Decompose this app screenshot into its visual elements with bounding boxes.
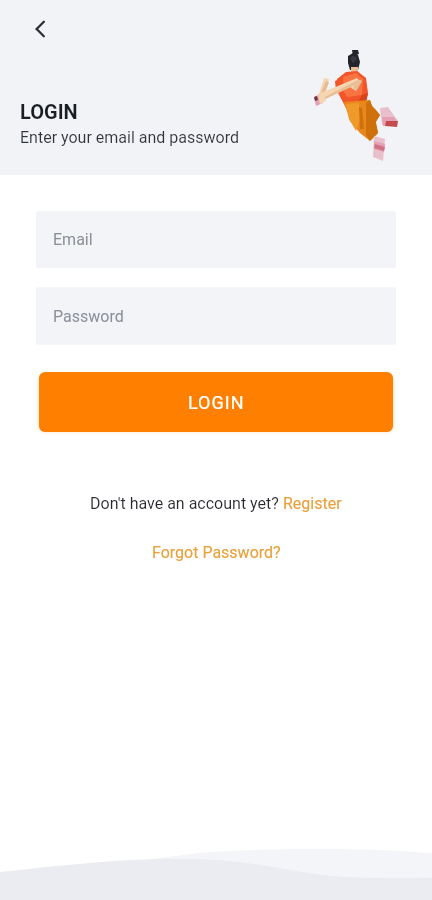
staticText: Password	[53, 307, 124, 326]
button[interactable]: Email	[36, 211, 396, 268]
staticText: Forgot Password?	[152, 543, 281, 562]
staticText: Enter your email and password	[20, 128, 239, 147]
staticText: LOGIN	[20, 100, 78, 123]
button[interactable]: Forgot Password?	[152, 543, 281, 562]
button[interactable]: Password	[36, 287, 396, 345]
staticText: Register	[283, 494, 342, 513]
staticText: LOGIN	[188, 392, 245, 413]
staticText: Don't have an account yet?	[90, 494, 283, 513]
button[interactable]: Register	[283, 494, 342, 513]
button[interactable]: LOGIN	[39, 372, 393, 432]
staticText: Email	[53, 230, 93, 249]
button[interactable]: Back	[20, 9, 60, 49]
